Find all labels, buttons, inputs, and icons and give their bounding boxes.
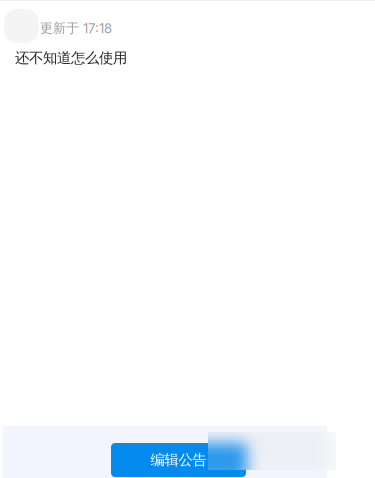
staticText: 还不知道怎么使用: [15, 49, 127, 67]
button[interactable]: 编辑公告: [111, 443, 246, 477]
staticText: 更新于 17:18: [40, 20, 112, 36]
staticText: 编辑公告: [150, 451, 206, 469]
